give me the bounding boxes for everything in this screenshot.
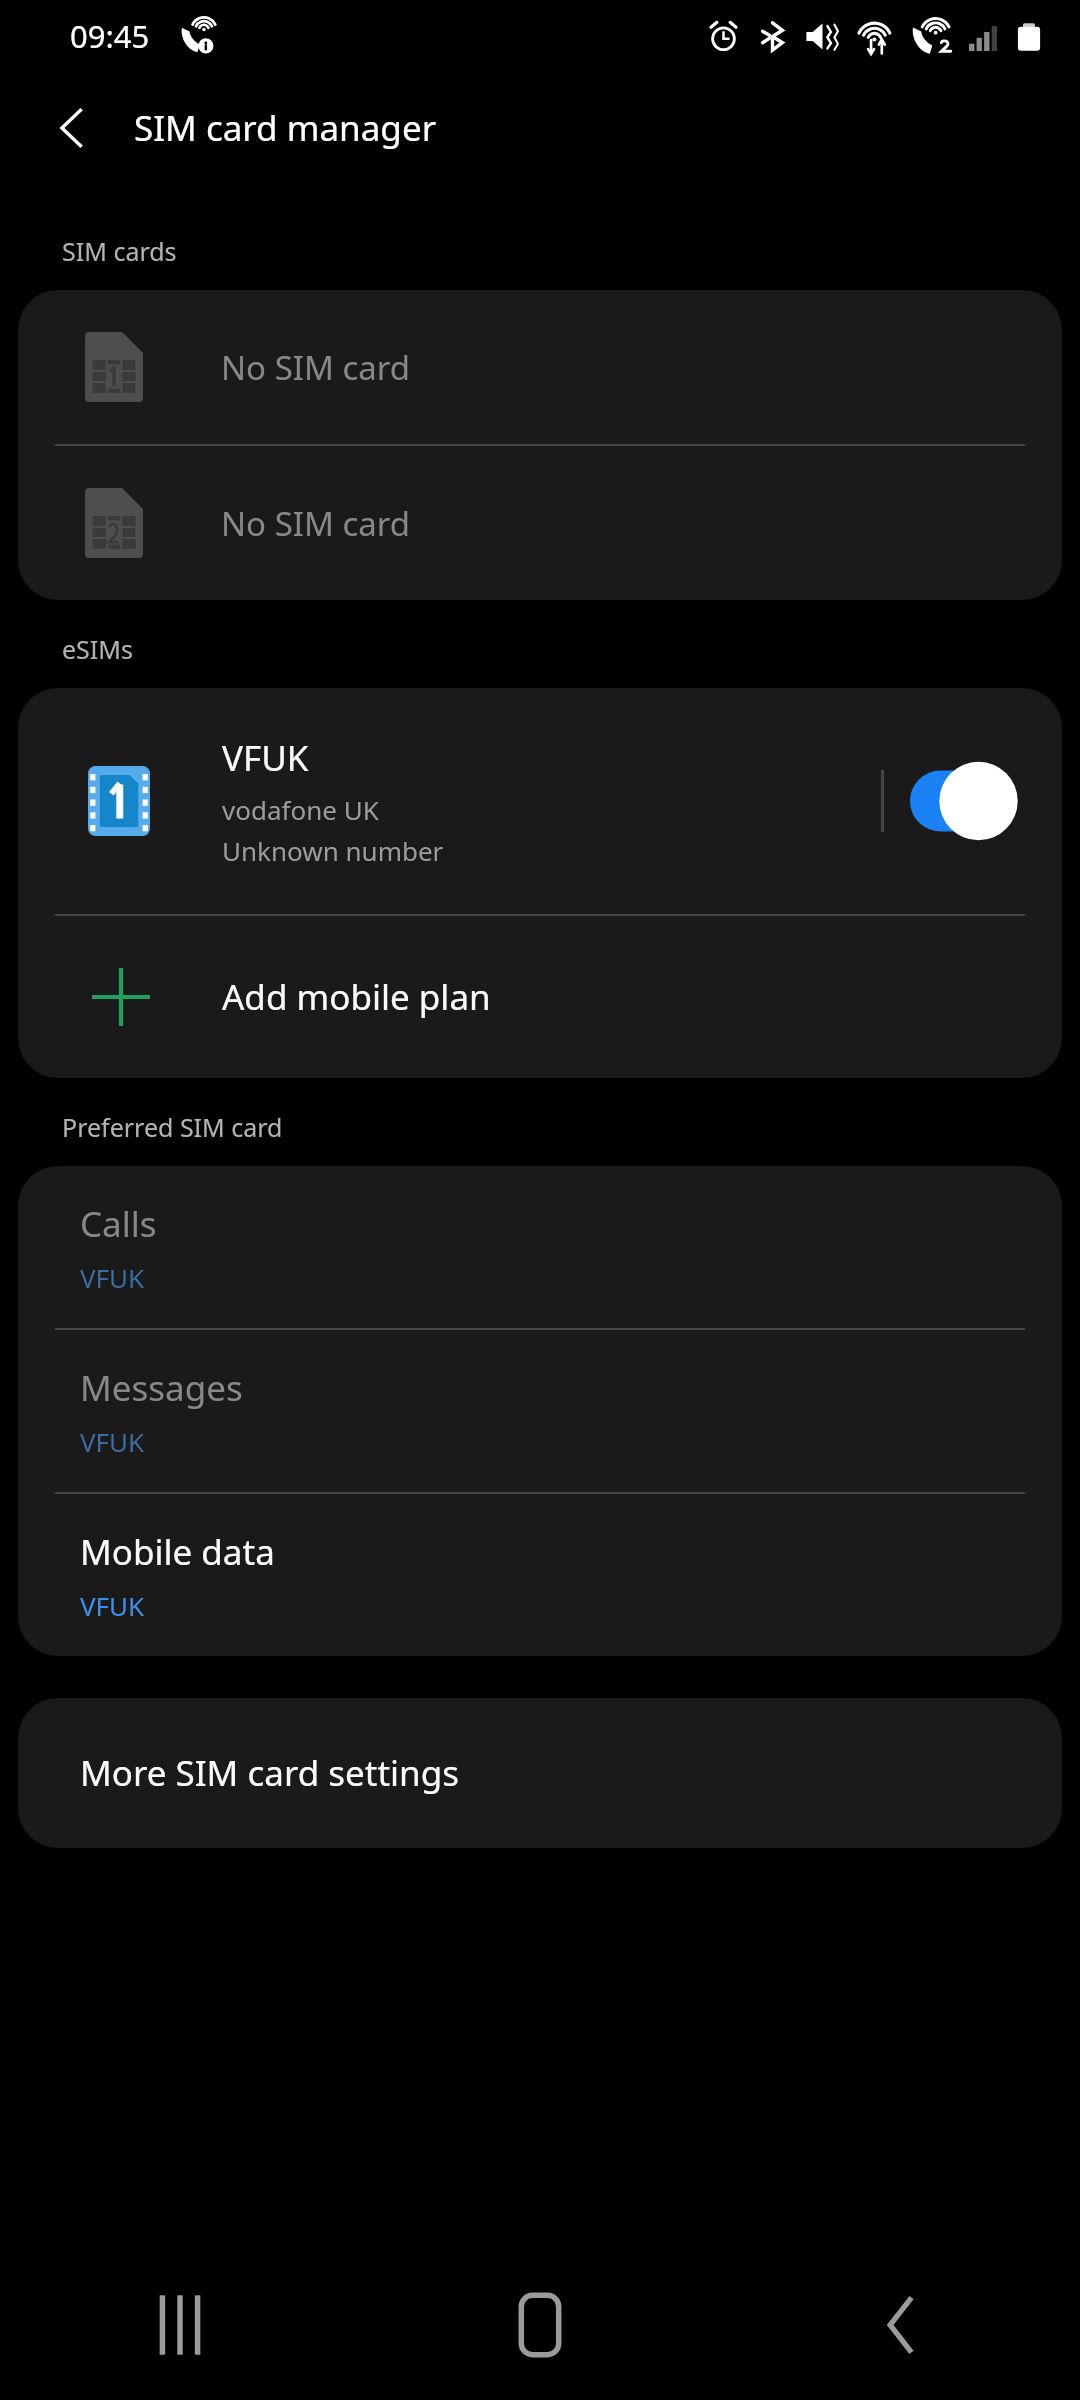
button[interactable]: No SIM card (18, 446, 1062, 600)
button[interactable]: Recent apps (0, 2250, 360, 2400)
staticText: Add mobile plan (222, 973, 491, 1021)
button[interactable]: No SIM card (18, 290, 1062, 444)
button[interactable]: Add mobile plan (18, 916, 1062, 1078)
staticText: Calls (80, 1200, 157, 1248)
staticText: Mobile data (80, 1528, 275, 1576)
staticText: Preferred SIM card (62, 1110, 283, 1144)
button[interactable]: More SIM card settings (18, 1698, 1062, 1848)
staticText: Unknown number (222, 833, 444, 868)
staticText: SIM card manager (134, 104, 437, 152)
button[interactable]: Calls (18, 1166, 1062, 1328)
button[interactable]: Home (360, 2250, 720, 2400)
button[interactable]: VFUK (18, 688, 1062, 914)
staticText: eSIMs (62, 632, 133, 666)
staticText: VFUK (80, 1424, 145, 1459)
staticText: 09:45 (70, 15, 150, 57)
staticText: SIM cards (62, 234, 177, 268)
button[interactable]: Back (720, 2250, 1080, 2400)
button[interactable]: Mobile data (18, 1494, 1062, 1656)
button[interactable]: Back (38, 94, 106, 162)
button[interactable]: VFUK eSIM on/off (910, 752, 1028, 850)
staticText: No SIM card (221, 345, 411, 390)
staticText: More SIM card settings (80, 1749, 459, 1797)
staticText: vodafone UK (222, 792, 379, 827)
staticText: Messages (80, 1364, 243, 1412)
staticText: No SIM card (221, 501, 411, 546)
staticText: VFUK (80, 1588, 145, 1623)
button[interactable]: Messages (18, 1330, 1062, 1492)
staticText: VFUK (222, 734, 309, 782)
staticText: VFUK (80, 1260, 145, 1295)
